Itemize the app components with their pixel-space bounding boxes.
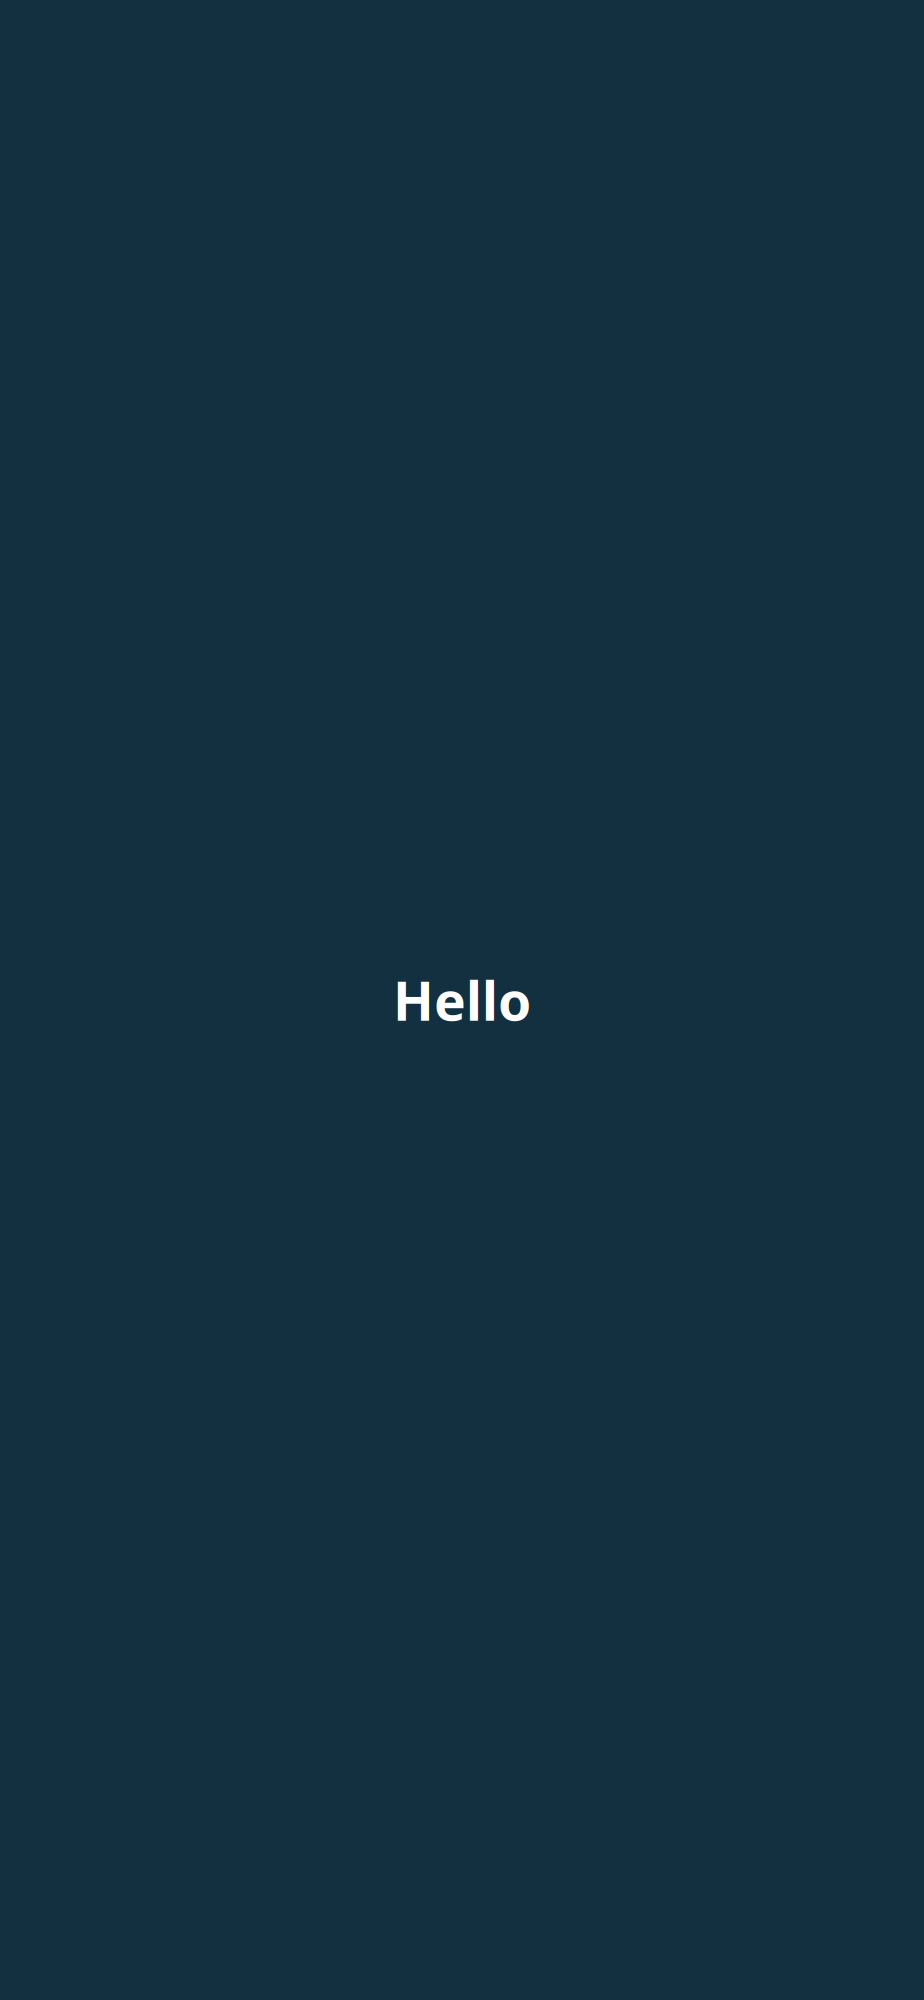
staticText: Hello [393,965,531,1035]
